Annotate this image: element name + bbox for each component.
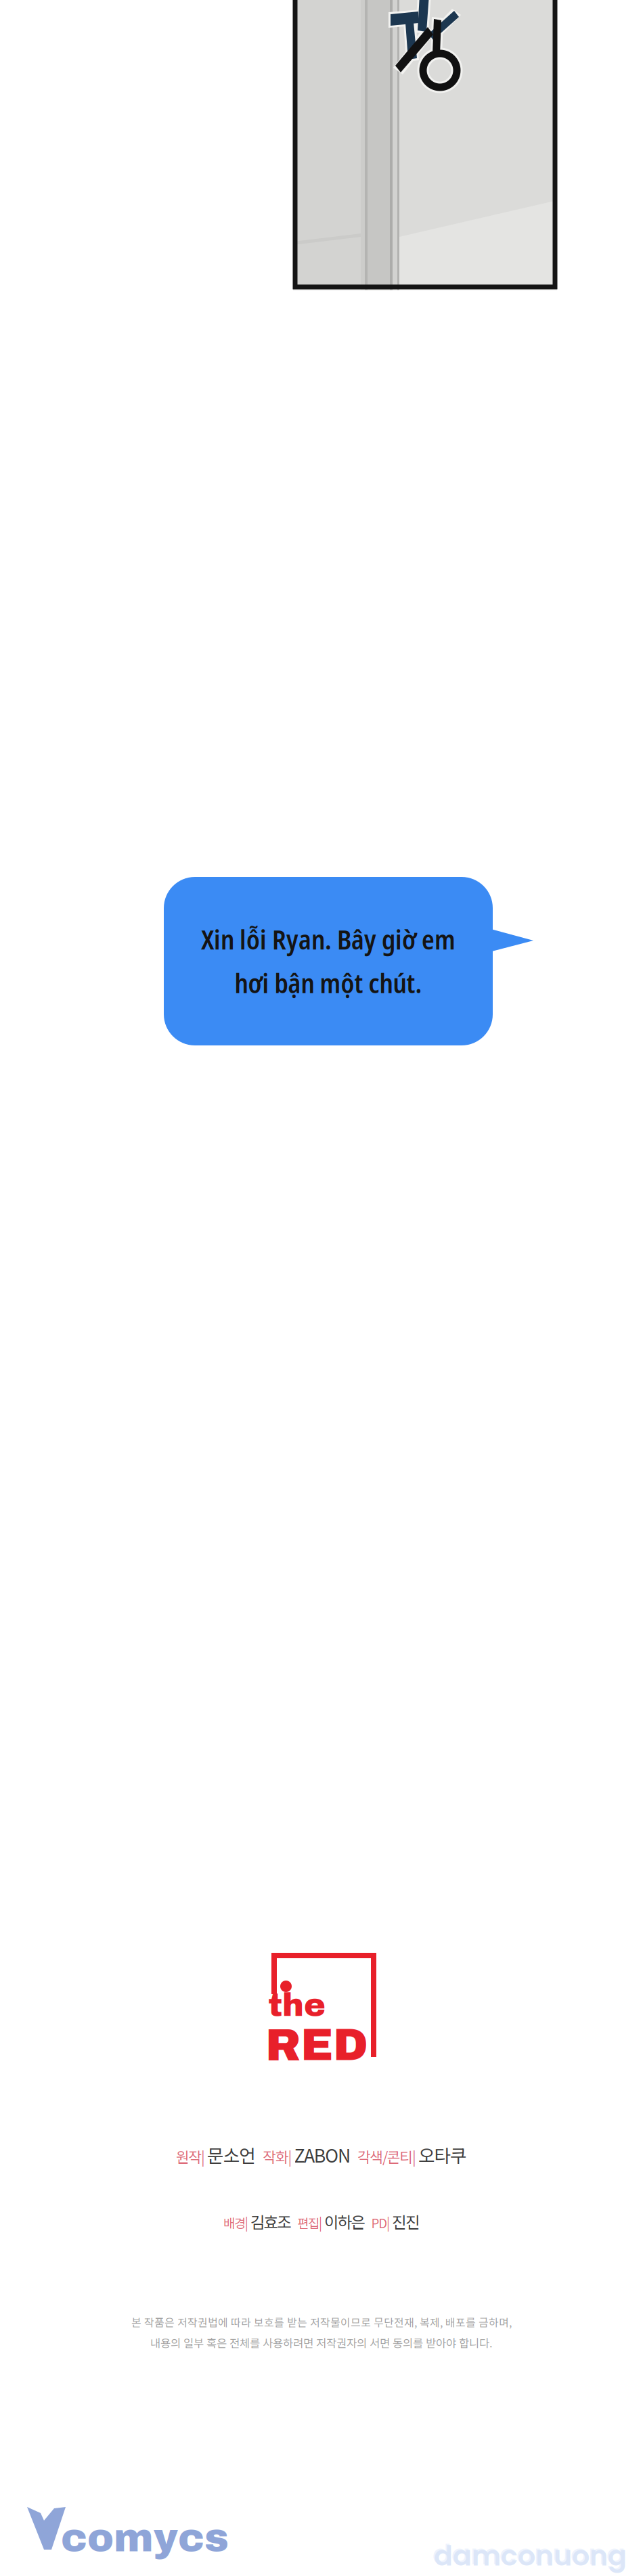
staticText: damconuong [434,2536,627,2575]
staticText: 내용의 일부 혹은 전체를 사용하려면 저작권자의 서면 동의를 받아야 합니다… [150,2334,493,2351]
staticText: the [268,1987,326,2023]
staticText: 편집| [297,2214,322,2232]
staticText: 오타쿠 [418,2142,467,2168]
staticText: 본 작품은 저작권법에 따라 보호를 받는 저작물이므로 무단전재, 복제, 배… [131,2314,512,2330]
staticText: PD| [371,2214,390,2232]
staticText: damconuong [433,2535,625,2574]
staticText: 진진 [392,2210,420,2233]
staticText: 배경| [223,2214,248,2232]
staticText: 작화| [263,2146,292,2167]
staticText: 이하은 [324,2210,365,2233]
staticText: ZABON [294,2142,351,2168]
staticText: hơi bận một chút. [235,965,422,1001]
staticText: Xin lỗi Ryan. Bây giờ em [201,921,456,957]
staticText: comycs [61,2516,229,2560]
staticText: 김효조 [250,2210,291,2233]
staticText: RED [265,2020,368,2070]
staticText: 각색/콘티| [357,2146,416,2167]
staticText: 문소언 [207,2142,256,2168]
staticText: 원작| [176,2146,205,2167]
